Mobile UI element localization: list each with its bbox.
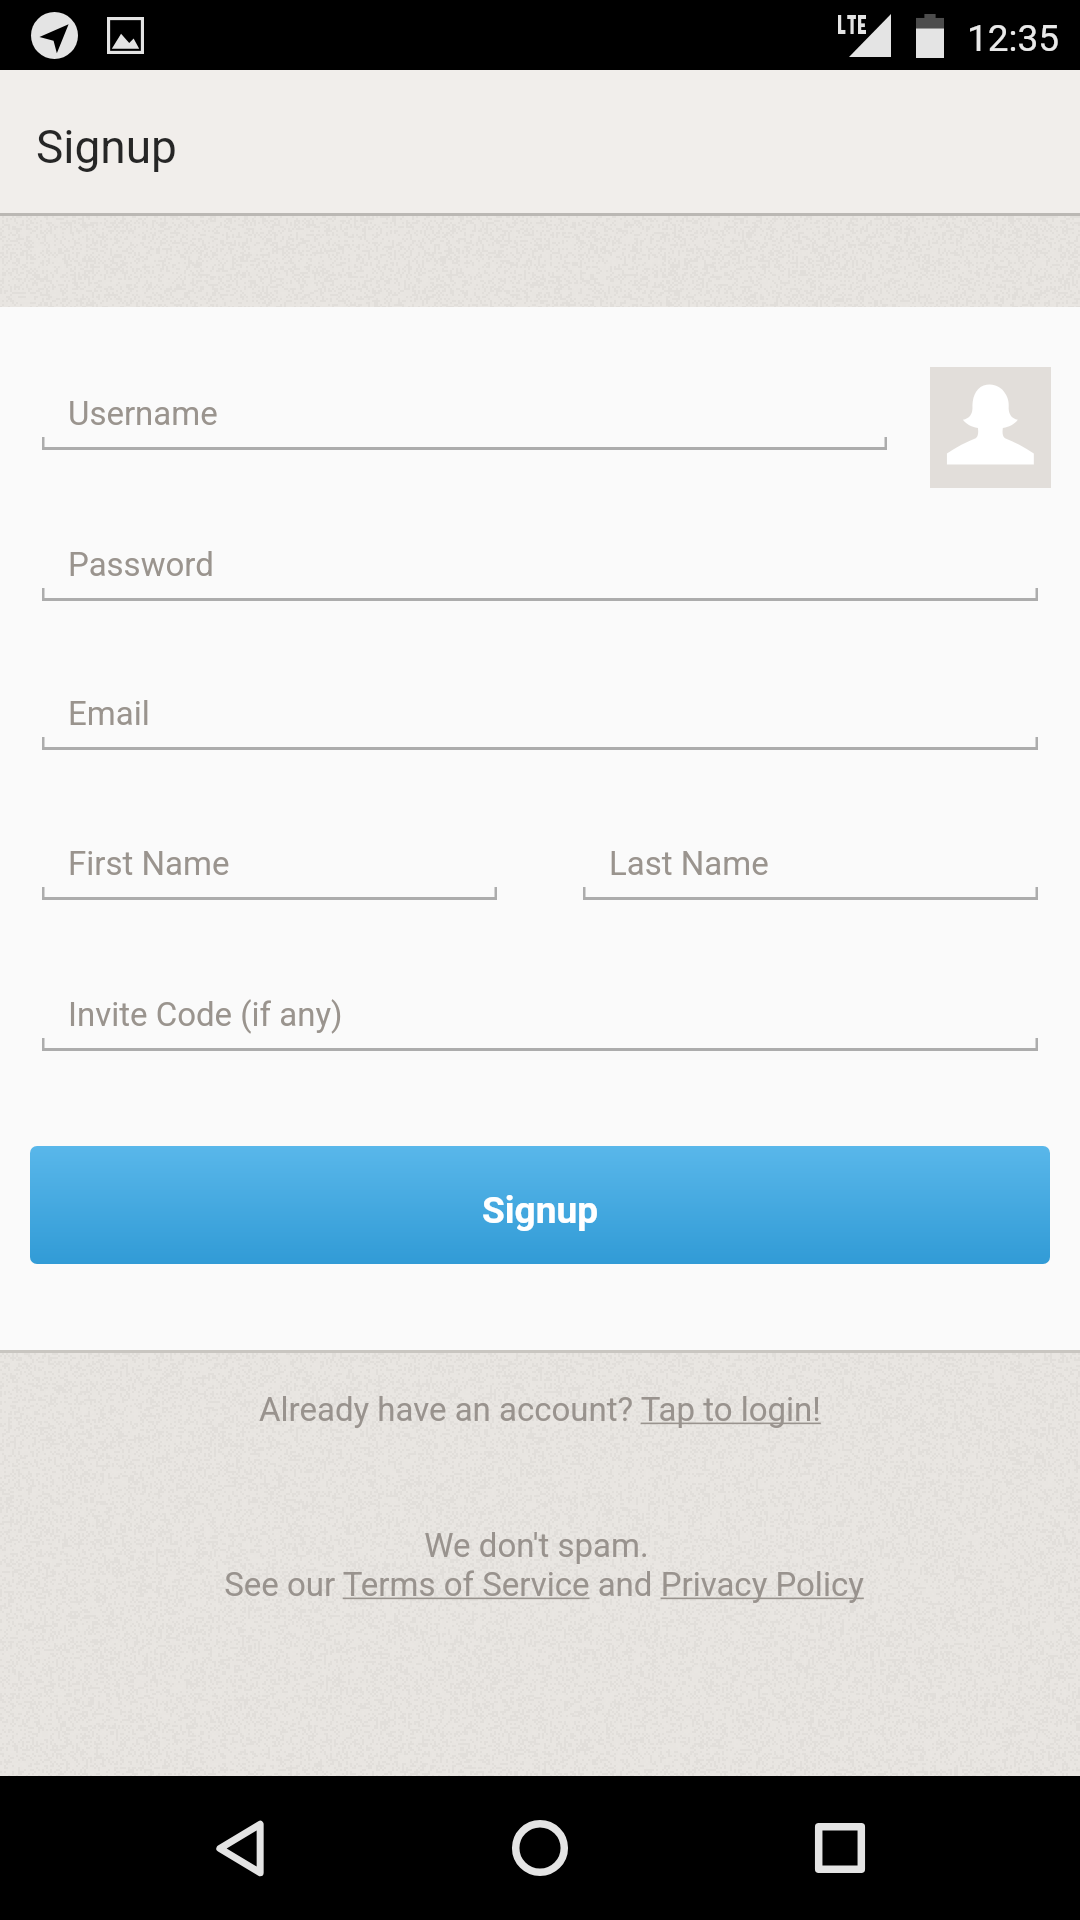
button[interactable]: Username — [42, 437, 887, 476]
staticText: Username — [68, 394, 218, 433]
button[interactable]: Profile picture — [930, 367, 1051, 488]
button[interactable]: Home — [450, 1798, 630, 1898]
staticText: Signup — [482, 1189, 598, 1232]
staticText: Invite Code (if any) — [68, 995, 343, 1034]
button[interactable]: Back — [150, 1798, 330, 1898]
button[interactable]: First Name — [42, 887, 497, 926]
staticText: Signup — [36, 120, 177, 174]
staticText: 12:35 — [967, 17, 1060, 60]
button[interactable]: Recent apps — [750, 1798, 930, 1898]
staticText: First Name — [68, 844, 230, 883]
staticText: We don't spam. — [424, 1526, 649, 1565]
button[interactable]: Last Name — [583, 887, 1038, 926]
button[interactable]: Email — [42, 737, 1038, 776]
button[interactable]: See our Terms of Service and Privacy Pol… — [224, 1565, 864, 1604]
staticText: Email — [68, 694, 150, 733]
button[interactable]: Already have an account? Tap to login! — [259, 1390, 821, 1429]
button[interactable]: Invite Code (if any) — [42, 1038, 1038, 1077]
button[interactable]: Signup — [30, 1146, 1050, 1264]
staticText: Password — [68, 545, 214, 584]
staticText: Last Name — [609, 844, 769, 883]
button[interactable]: Password — [42, 588, 1038, 627]
